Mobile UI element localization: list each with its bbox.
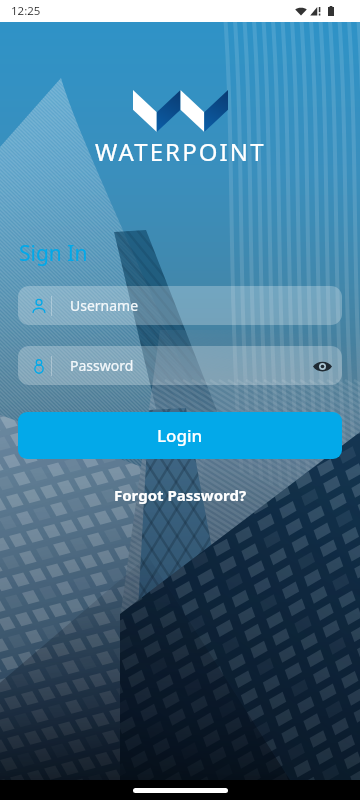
staticText: Password: [70, 356, 134, 375]
staticText: WATERPOINT: [95, 135, 266, 168]
staticText: Login: [157, 424, 203, 447]
button[interactable]: Show password: [304, 348, 340, 384]
staticText: Username: [70, 296, 139, 315]
button[interactable]: Password: [18, 346, 342, 385]
staticText: 12:25: [11, 3, 41, 19]
button[interactable]: Forgot Password?: [108, 479, 253, 511]
button[interactable]: Username: [18, 286, 342, 325]
button[interactable]: Login: [18, 412, 342, 459]
staticText: Sign In: [19, 239, 88, 268]
